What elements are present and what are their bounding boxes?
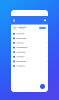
button[interactable] bbox=[11, 41, 48, 45]
button[interactable] bbox=[11, 59, 48, 64]
button[interactable] bbox=[11, 45, 48, 50]
button[interactable]: Menu bbox=[11, 16, 17, 24]
button[interactable] bbox=[11, 64, 48, 68]
button[interactable] bbox=[11, 31, 48, 36]
button[interactable] bbox=[11, 54, 48, 59]
button[interactable] bbox=[11, 50, 48, 54]
button[interactable]: Compose bbox=[40, 84, 45, 89]
button[interactable] bbox=[11, 36, 48, 41]
button[interactable]: Search bbox=[42, 16, 48, 24]
